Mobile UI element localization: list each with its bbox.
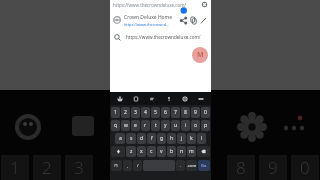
button[interactable]: https://www.thecrowndeluxe.com/ — [110, 0, 211, 9]
staticText: 5 — [154, 109, 157, 116]
staticText: j — [181, 135, 183, 142]
button[interactable]: g — [157, 133, 166, 144]
button[interactable]: 7 — [171, 107, 180, 118]
button[interactable]: u — [171, 120, 180, 131]
button[interactable]: 4 — [141, 107, 150, 118]
button[interactable]: a — [115, 133, 125, 144]
staticText: 2 — [124, 109, 127, 116]
button[interactable]: i — [181, 120, 190, 131]
staticText: d — [140, 135, 144, 142]
staticText: 6 — [164, 109, 167, 116]
staticText: u — [174, 122, 178, 129]
button[interactable]: d — [137, 133, 146, 144]
button[interactable]: q — [111, 120, 120, 131]
staticText: 9 — [268, 156, 278, 179]
button[interactable]: 3 — [131, 107, 140, 118]
button[interactable]: z — [126, 146, 136, 157]
button[interactable]: . — [176, 160, 185, 171]
button[interactable]: 9 — [191, 107, 200, 118]
button[interactable]: Shift — [111, 146, 125, 157]
staticText: z — [130, 148, 133, 155]
button[interactable]: Settings — [180, 94, 190, 104]
button[interactable]: Backspace — [197, 146, 210, 157]
staticText: .com — [187, 163, 197, 168]
staticText: m — [189, 148, 194, 155]
button[interactable]: o — [191, 120, 200, 131]
button[interactable]: 2 — [121, 107, 130, 118]
button[interactable]: s — [126, 133, 136, 144]
button[interactable]: Go — [198, 160, 210, 171]
staticText: Go — [201, 163, 207, 168]
staticText: p — [204, 122, 208, 129]
button[interactable]: 5 — [151, 107, 160, 118]
button[interactable]: https://www.thecrowndeluxe.com/ — [110, 31, 211, 43]
button[interactable]: l — [197, 133, 206, 144]
button[interactable]: Share — [178, 15, 188, 25]
button[interactable]: Clipboard — [131, 94, 141, 104]
staticText: s — [130, 135, 133, 142]
staticText: b — [170, 148, 174, 155]
button[interactable]: r — [141, 120, 150, 131]
button[interactable]: p — [201, 120, 210, 131]
staticText: https://www.thecrowndeluxe.com/ — [113, 2, 201, 8]
button[interactable]: Emoji — [115, 94, 125, 104]
button[interactable]: e — [131, 120, 140, 131]
staticText: 8 — [184, 109, 187, 116]
button[interactable]: v — [157, 146, 166, 157]
staticText: g — [160, 135, 164, 142]
button[interactable]: Account — [192, 47, 208, 63]
staticText: k — [190, 135, 193, 142]
staticText: . — [180, 163, 182, 168]
button[interactable]: Translate — [147, 94, 157, 104]
button[interactable]: / — [133, 160, 142, 171]
staticText: 0 — [300, 156, 310, 179]
staticText: w — [124, 122, 128, 129]
staticText: v — [160, 148, 163, 155]
staticText: https://www.thecrownd... — [124, 22, 170, 27]
button[interactable]: Clear — [201, 1, 208, 8]
staticText: h — [170, 135, 174, 142]
staticText: r — [144, 122, 147, 129]
button[interactable]: c — [147, 146, 156, 157]
button[interactable]: Crown Deluxe Home — [110, 13, 211, 27]
button[interactable]: w — [121, 120, 130, 131]
button[interactable]: b — [167, 146, 176, 157]
button[interactable]: 0 — [201, 107, 210, 118]
button[interactable]: Edit query — [198, 15, 208, 25]
staticText: , — [127, 163, 129, 168]
staticText: Crown Deluxe Home — [124, 14, 173, 21]
button[interactable]: y — [161, 120, 170, 131]
button[interactable]: x — [137, 146, 146, 157]
staticText: c — [150, 148, 153, 155]
staticText: 3 — [134, 109, 137, 116]
button[interactable]: n — [177, 146, 186, 157]
button[interactable]: Voice input — [164, 94, 174, 104]
button[interactable]: 1 — [111, 107, 120, 118]
button[interactable]: f — [147, 133, 156, 144]
staticText: y — [164, 122, 167, 129]
button[interactable]: 8 — [181, 107, 190, 118]
button[interactable]: , — [123, 160, 132, 171]
staticText: ?1 — [114, 163, 119, 168]
staticText: 1 — [10, 156, 20, 179]
staticText: f — [151, 135, 153, 142]
staticText: 4 — [144, 109, 147, 116]
button[interactable]: t — [151, 120, 160, 131]
button[interactable]: Copy — [188, 15, 198, 25]
staticText: https://www.thecrowndeluxe.com/ — [126, 34, 201, 40]
button[interactable]: m — [187, 146, 196, 157]
staticText: M — [197, 50, 204, 60]
button[interactable]: j — [177, 133, 186, 144]
staticText: l — [201, 135, 203, 142]
button[interactable]: k — [187, 133, 196, 144]
staticText: 2 — [42, 156, 52, 179]
button[interactable]: .com — [186, 160, 197, 171]
button[interactable]: 6 — [161, 107, 170, 118]
button[interactable]: ?1 — [111, 160, 122, 171]
staticText: 8 — [236, 156, 246, 179]
staticText: 3 — [74, 156, 84, 179]
button[interactable]: h — [167, 133, 176, 144]
staticText: n — [180, 148, 184, 155]
button[interactable]: More options — [196, 94, 206, 104]
